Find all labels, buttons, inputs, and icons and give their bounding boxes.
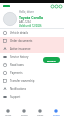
button[interactable]: Home bbox=[0, 105, 16, 120]
button[interactable]: Action bbox=[58, 4, 62, 8]
staticText: ABC-1234 bbox=[19, 20, 31, 24]
button[interactable]: Active insurance bbox=[0, 45, 64, 53]
staticText: Profile bbox=[53, 114, 60, 117]
button[interactable]: Order documents bbox=[0, 37, 64, 45]
staticText: Road taxes bbox=[10, 63, 24, 67]
button[interactable]: Action bbox=[50, 4, 54, 8]
staticText: Payments bbox=[10, 71, 23, 75]
button[interactable]: RENEW bbox=[43, 57, 60, 63]
button[interactable]: Road taxes bbox=[0, 61, 64, 69]
button[interactable]: Transfer ownership bbox=[0, 77, 64, 85]
staticText: Home bbox=[5, 114, 12, 117]
staticText: Active insurance bbox=[10, 47, 31, 51]
staticText: Order documents bbox=[10, 39, 33, 43]
staticText: Service history bbox=[10, 55, 29, 59]
staticText: Valid until 12/2026 bbox=[19, 24, 42, 28]
staticText: Toyota Corolla bbox=[19, 15, 44, 20]
button[interactable]: Notifications bbox=[0, 85, 64, 93]
button[interactable]: Search bbox=[16, 105, 32, 120]
staticText: Vehicle details bbox=[10, 31, 28, 35]
button[interactable]: Wallet bbox=[32, 105, 48, 120]
staticText: Support bbox=[10, 95, 21, 99]
button[interactable]: Vehicle details bbox=[0, 29, 64, 37]
staticText: Wallet bbox=[37, 114, 44, 117]
staticText: Notifications bbox=[10, 87, 26, 91]
button[interactable]: Support bbox=[0, 93, 64, 101]
staticText: Hello, driver bbox=[19, 10, 34, 14]
staticText: Search bbox=[21, 114, 28, 117]
button[interactable]: Service history bbox=[0, 53, 64, 61]
button[interactable]: Action bbox=[54, 4, 58, 8]
button[interactable]: Profile bbox=[48, 105, 64, 120]
staticText: RENEW bbox=[47, 59, 56, 62]
staticText: Transfer ownership bbox=[10, 79, 35, 83]
button[interactable]: Payments bbox=[0, 69, 64, 77]
